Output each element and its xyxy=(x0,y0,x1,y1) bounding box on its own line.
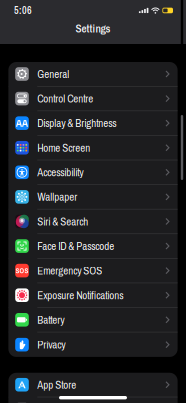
staticText: Settings xyxy=(75,21,110,36)
button[interactable]: AA xyxy=(8,111,178,136)
staticText: SOS xyxy=(15,266,28,275)
staticText: Siri & Search xyxy=(37,214,88,229)
button[interactable]: General xyxy=(8,62,178,87)
button[interactable]: Face ID & Passcode xyxy=(8,234,178,259)
staticText: Wallpaper xyxy=(37,189,77,204)
staticText: Display & Brightness xyxy=(37,116,116,130)
staticText: Exposure Notifications xyxy=(37,288,123,302)
button[interactable]: Accessibility xyxy=(8,160,178,185)
button[interactable]: Control Centre xyxy=(8,87,178,111)
button[interactable]: Privacy xyxy=(8,332,178,357)
button[interactable]: Siri & Search xyxy=(8,209,178,234)
button[interactable]: Wallpaper xyxy=(8,185,178,209)
staticText: Emergency SOS xyxy=(37,263,102,278)
staticText: Accessibility xyxy=(37,165,83,180)
button[interactable]: App Store xyxy=(8,373,178,397)
button[interactable]: Home Screen xyxy=(8,136,178,160)
button[interactable]: Battery xyxy=(8,308,178,332)
staticText: Control Centre xyxy=(37,91,93,106)
staticText: General xyxy=(37,67,69,81)
staticText: Battery xyxy=(37,312,64,327)
staticText: AA xyxy=(16,116,28,130)
staticText: App Store xyxy=(37,377,76,392)
button[interactable]: SOS xyxy=(8,259,178,283)
staticText: Home Screen xyxy=(37,140,90,155)
staticText: Privacy xyxy=(37,337,65,352)
button[interactable]: Wallet xyxy=(8,397,178,403)
staticText: Face ID & Passcode xyxy=(37,239,114,253)
staticText: 5:06 xyxy=(14,4,32,17)
button[interactable]: Exposure Notifications xyxy=(8,283,178,308)
